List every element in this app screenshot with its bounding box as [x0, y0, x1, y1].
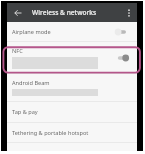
staticText: Wireless & networks: [32, 8, 97, 17]
staticText: Airplane mode: [12, 28, 51, 36]
button[interactable]: Tap & pay: [7, 102, 137, 122]
staticText: NFC: [12, 47, 23, 55]
staticText: Android Beam: [12, 79, 50, 87]
button[interactable]: Airplane mode: [7, 22, 137, 41]
button[interactable]: Back: [9, 4, 27, 22]
button[interactable]: NFC on: [115, 53, 137, 63]
button[interactable]: More options: [121, 5, 137, 21]
button[interactable]: Tethering & portable hotspot: [7, 123, 137, 142]
button[interactable]: Android Beam: [7, 74, 137, 101]
button[interactable]: NFC: [7, 42, 137, 73]
staticText: Tethering & portable hotspot: [12, 129, 89, 137]
button[interactable]: Airplane mode off: [115, 27, 137, 37]
staticText: Tap & pay: [12, 108, 38, 116]
